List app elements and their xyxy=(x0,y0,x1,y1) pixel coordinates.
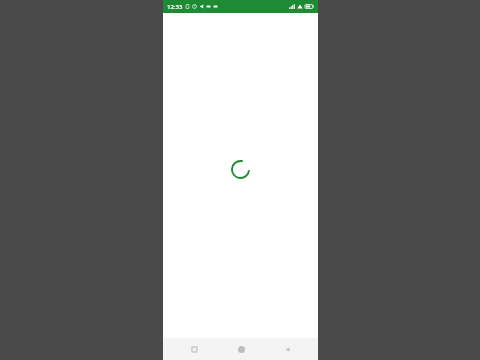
button[interactable]: Back xyxy=(272,338,302,360)
button[interactable]: Home xyxy=(226,338,256,360)
button[interactable]: Recent apps xyxy=(179,338,209,360)
staticText: 12:33 xyxy=(167,3,183,11)
